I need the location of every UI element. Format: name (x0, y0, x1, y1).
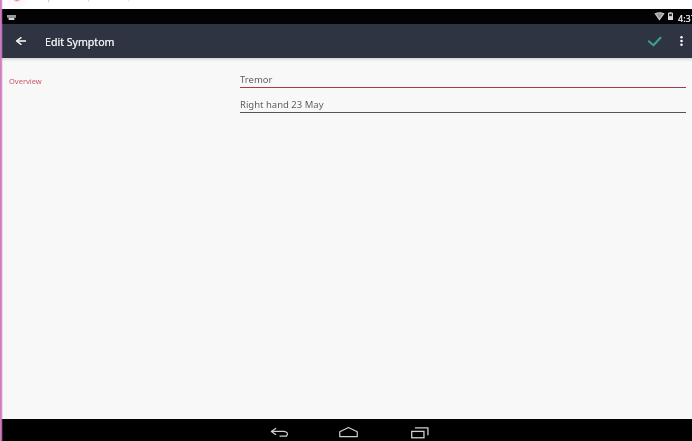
button[interactable]: Save (643, 30, 665, 52)
staticText: Overview (9, 76, 42, 86)
button[interactable]: Recent apps (409, 421, 430, 441)
button[interactable]: Navigate up (9, 29, 33, 53)
button[interactable]: Back (269, 421, 290, 441)
staticText: Tremor (240, 73, 273, 86)
button[interactable]: Home (338, 421, 359, 441)
button[interactable]: More options (671, 31, 691, 51)
staticText: Right hand 23 May (240, 98, 324, 111)
staticText: 4:37 (678, 12, 692, 24)
staticText: Edit Symptom (45, 35, 115, 49)
button[interactable]: Overview (9, 74, 42, 84)
button[interactable]: Tremor (240, 71, 686, 88)
button[interactable]: Right hand 23 May (240, 96, 686, 113)
